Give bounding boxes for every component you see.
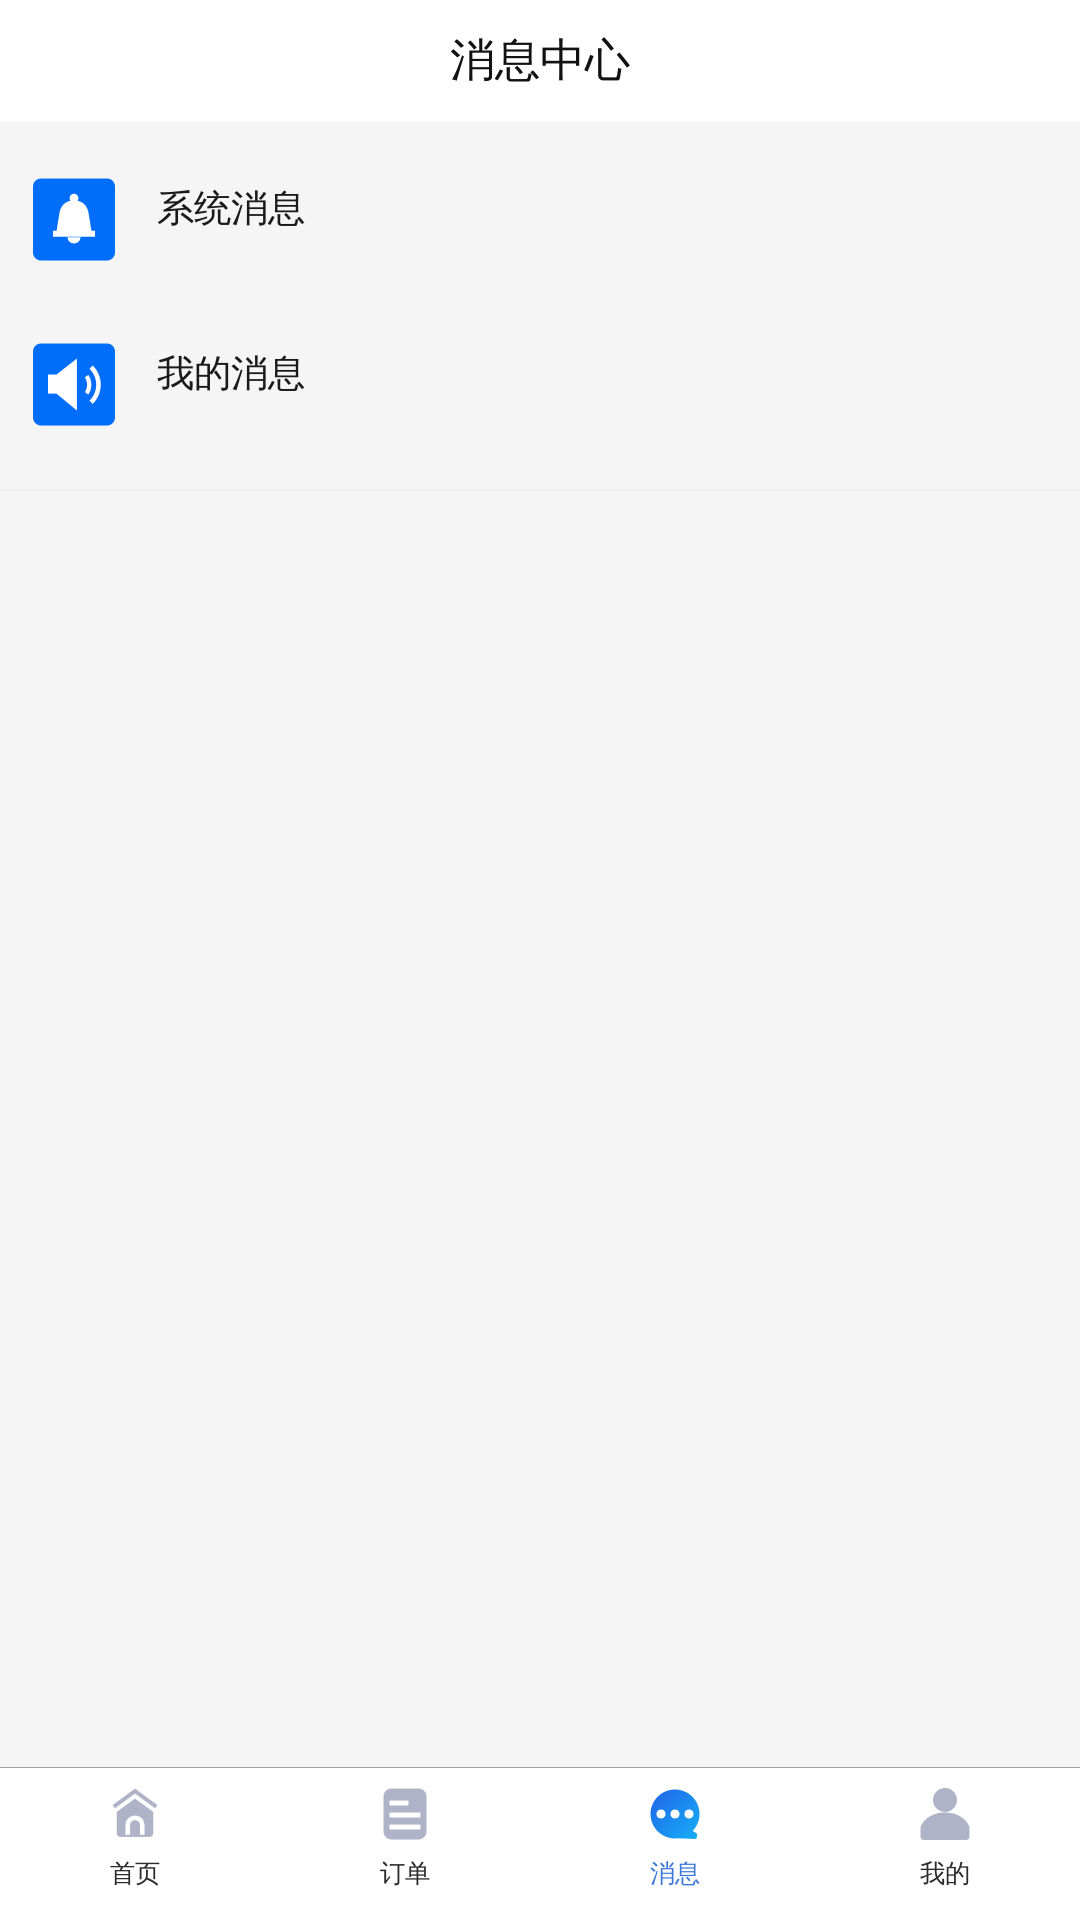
staticText: 消息中心 [450,33,630,88]
button[interactable]: 系统消息 [0,137,1080,302]
staticText: 订单 [380,1858,430,1889]
button[interactable]: 我的 [810,1768,1080,1915]
staticText: 我的 [920,1858,970,1889]
button[interactable]: 我的消息 [0,302,1080,467]
button[interactable]: 订单 [270,1768,540,1915]
staticText: 我的消息 [157,351,305,396]
button[interactable]: 消息 [540,1768,810,1915]
staticText: 系统消息 [157,186,305,231]
staticText: 消息 [650,1858,700,1889]
button[interactable]: 首页 [0,1768,270,1915]
staticText: 首页 [110,1858,160,1889]
